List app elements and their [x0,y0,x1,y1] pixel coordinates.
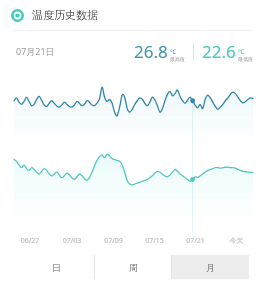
staticText: 月 [206,262,215,273]
staticText: 07月21日 [16,45,55,57]
staticText: 06/27 [9,236,51,246]
button[interactable]: 月 [172,255,249,279]
staticText: 22.6 [202,40,236,63]
other: Temperature [11,9,24,22]
staticText: 26.8 [134,40,168,63]
staticText: ℃ [238,48,244,56]
staticText: 07/03 [51,236,93,246]
staticText: 最高值 [170,56,185,62]
staticText: 07/21 [175,236,216,246]
staticText: 温度历史数据 [32,8,98,22]
staticText: 周 [129,262,138,273]
staticText: 最低值 [238,56,253,62]
staticText: 07/15 [134,236,175,246]
button[interactable]: 日 [17,255,95,279]
staticText: 日 [52,262,61,273]
staticText: 07/09 [93,236,134,246]
staticText: ℃ [170,48,176,56]
button[interactable]: 周 [95,255,172,279]
staticText: 今天 [216,236,257,245]
